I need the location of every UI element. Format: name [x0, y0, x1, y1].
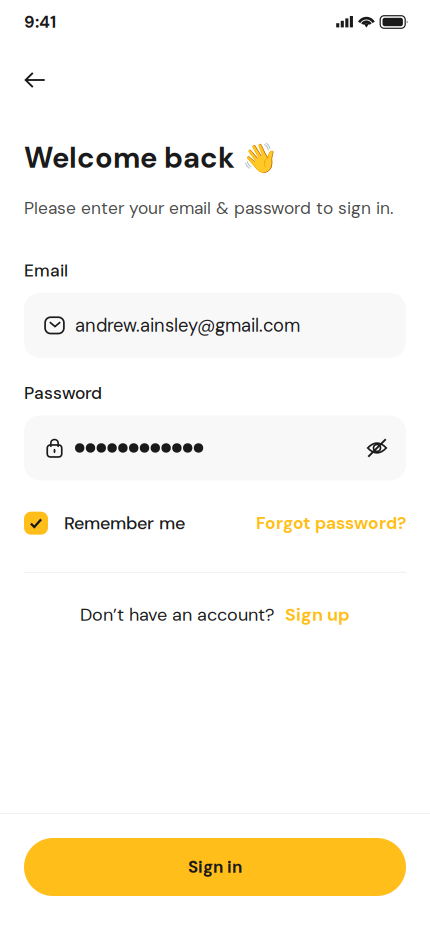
staticText: Sign up — [285, 603, 350, 626]
button[interactable]: Back — [13, 58, 57, 102]
button[interactable]: Remember me — [24, 511, 185, 535]
staticText: Please enter your email & password to si… — [24, 197, 393, 219]
button[interactable]: Sign in — [24, 838, 406, 896]
staticText: andrew.ainsley@gmail.com — [75, 313, 300, 337]
staticText: Forgot password? — [256, 512, 406, 534]
staticText: Don’t have an account? — [80, 603, 274, 626]
staticText: Sign in — [188, 856, 242, 878]
button[interactable]: Sign up — [285, 603, 350, 626]
button[interactable]: Forgot password? — [256, 512, 406, 534]
button[interactable]: Show password — [355, 426, 399, 470]
staticText: Remember me — [64, 511, 185, 535]
staticText: Password — [24, 382, 102, 404]
staticText: Email — [24, 259, 68, 282]
staticText: Welcome back 👋 — [24, 139, 278, 177]
staticText: 9:41 — [24, 11, 56, 33]
